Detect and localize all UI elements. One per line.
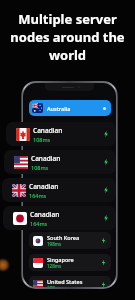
staticText: Singapore — [47, 256, 74, 263]
staticText: 164ms — [29, 192, 47, 199]
staticText: Multiple server nodes around the world — [0, 10, 135, 64]
staticText: Canadian — [30, 210, 60, 219]
button[interactable]: Australia — [29, 100, 111, 116]
button[interactable]: Singapore — [29, 254, 111, 271]
staticText: South Korea — [47, 234, 80, 241]
staticText: Australia — [47, 105, 71, 112]
button[interactable]: Canadian — [4, 150, 116, 174]
other: Signal strength — [100, 259, 107, 266]
staticText: United States — [47, 278, 83, 285]
other: Signal strength — [102, 214, 110, 222]
staticText: Canadian — [29, 182, 59, 191]
button[interactable]: Canadian — [6, 122, 116, 146]
other: Signal strength — [102, 186, 110, 194]
other: Connected — [102, 106, 107, 111]
button[interactable]: Canadian — [2, 178, 116, 202]
staticText: 164ms — [30, 220, 48, 227]
button[interactable]: United States — [29, 276, 111, 287]
other: Signal strength — [100, 281, 107, 287]
other: Signal strength — [100, 237, 107, 244]
staticText: 108ms — [31, 164, 49, 171]
other: Signal strength — [102, 158, 110, 166]
button[interactable]: Canadian — [3, 206, 116, 230]
staticText: 198ms — [47, 241, 62, 247]
other: Signal strength — [102, 130, 110, 138]
staticText: 108ms — [33, 136, 51, 143]
staticText: 128ms — [47, 263, 62, 269]
staticText: 188ms — [47, 285, 62, 287]
staticText: Canadian — [33, 126, 63, 135]
staticText: Canadian — [31, 154, 61, 163]
button[interactable]: South Korea — [29, 232, 111, 249]
